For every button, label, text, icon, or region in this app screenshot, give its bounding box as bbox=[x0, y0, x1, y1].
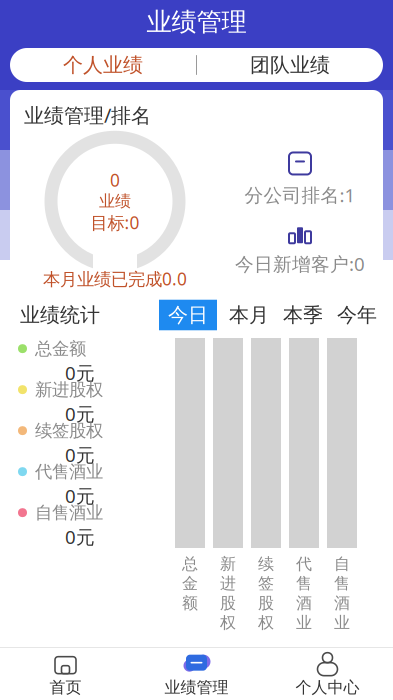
staticText: 酒 bbox=[296, 593, 312, 613]
staticText: 0元 bbox=[65, 401, 95, 426]
staticText: 本月 bbox=[229, 303, 269, 327]
staticText: 本季 bbox=[283, 303, 323, 327]
staticText: 本月业绩已完成0.0 bbox=[43, 267, 187, 290]
button[interactable]: 今年 bbox=[335, 303, 379, 327]
staticText: 分公司排名:1 bbox=[244, 182, 355, 207]
button[interactable]: 今日 bbox=[159, 300, 217, 330]
button[interactable]: 团队业绩 bbox=[197, 48, 383, 82]
button[interactable]: 本月 bbox=[227, 303, 271, 327]
staticText: 额 bbox=[182, 593, 198, 613]
staticText: 0元 bbox=[65, 483, 95, 508]
staticText: 股 bbox=[220, 593, 236, 613]
staticText: 0 bbox=[110, 168, 120, 191]
staticText: 权 bbox=[258, 613, 274, 633]
staticText: 业绩 bbox=[99, 191, 131, 211]
staticText: 代售酒业 bbox=[35, 461, 103, 482]
staticText: 新进股权 bbox=[35, 379, 103, 400]
staticText: 业绩统计 bbox=[20, 303, 100, 327]
staticText: 总金额 bbox=[35, 338, 86, 359]
staticText: 自售酒业 bbox=[35, 502, 103, 523]
staticText: 酒 bbox=[334, 593, 350, 613]
staticText: 今日新增客户:0 bbox=[235, 251, 365, 276]
staticText: 今年 bbox=[337, 303, 377, 327]
staticText: 代 bbox=[296, 554, 312, 574]
staticText: 金 bbox=[182, 574, 198, 593]
staticText: 新 bbox=[220, 554, 236, 574]
staticText: 售 bbox=[334, 574, 350, 593]
staticText: 业绩管理 bbox=[164, 678, 228, 697]
button[interactable]: 本季 bbox=[281, 303, 325, 327]
staticText: 目标:0 bbox=[90, 211, 139, 234]
staticText: 业 bbox=[296, 613, 312, 633]
button[interactable]: 个人业绩 bbox=[10, 48, 196, 82]
staticText: 自 bbox=[334, 554, 350, 574]
staticText: 业绩管理/排名 bbox=[24, 102, 151, 128]
staticText: 今日 bbox=[168, 303, 208, 327]
staticText: 权 bbox=[220, 613, 236, 633]
staticText: 个人中心 bbox=[295, 678, 359, 697]
staticText: 签 bbox=[258, 574, 274, 593]
button[interactable]: 首页 bbox=[0, 648, 131, 700]
staticText: 团队业绩 bbox=[250, 53, 330, 77]
staticText: 业 bbox=[334, 613, 350, 633]
staticText: 业绩管理 bbox=[146, 6, 246, 37]
button[interactable]: 业绩管理 bbox=[131, 648, 262, 700]
staticText: 售 bbox=[296, 574, 312, 593]
staticText: 0元 bbox=[65, 360, 95, 385]
staticText: 进 bbox=[220, 574, 236, 593]
staticText: 续签股权 bbox=[35, 420, 103, 441]
staticText: 0元 bbox=[65, 524, 95, 549]
staticText: 股 bbox=[258, 593, 274, 613]
button[interactable]: 个人中心 bbox=[262, 648, 393, 700]
staticText: 个人业绩 bbox=[63, 53, 143, 77]
staticText: 总 bbox=[182, 554, 198, 574]
staticText: 首页 bbox=[49, 678, 81, 697]
staticText: 0元 bbox=[65, 442, 95, 467]
staticText: 续 bbox=[258, 554, 274, 574]
